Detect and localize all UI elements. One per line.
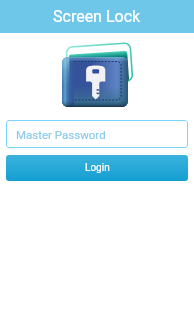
button[interactable]: Master Password: [6, 120, 188, 148]
staticText: Master Password: [16, 128, 106, 141]
staticText: Login: [85, 162, 110, 174]
button[interactable]: Login: [6, 155, 188, 181]
staticText: Screen Lock: [53, 7, 141, 26]
